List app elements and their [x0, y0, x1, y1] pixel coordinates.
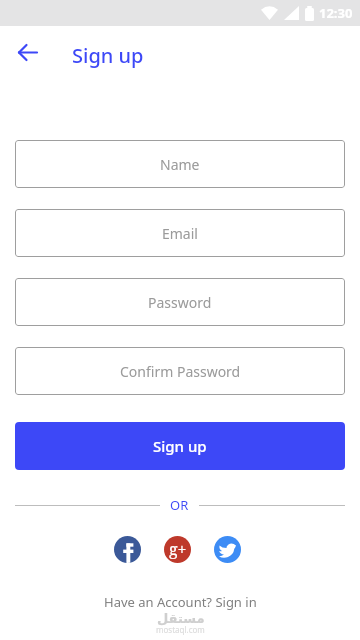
- staticText: Sign up: [72, 42, 144, 69]
- staticText: 12:30: [319, 4, 353, 22]
- staticText: Email: [162, 224, 198, 243]
- staticText: mostaql.com: [156, 624, 205, 635]
- staticText: Sign up: [153, 436, 207, 456]
- staticText: Password: [148, 293, 212, 312]
- staticText: g+: [169, 538, 187, 560]
- button[interactable]: Email: [15, 209, 345, 257]
- button[interactable]: Sign up: [15, 422, 345, 470]
- button[interactable]: g+: [164, 536, 191, 563]
- button[interactable]: Name: [15, 140, 345, 188]
- button[interactable]: [114, 536, 141, 563]
- button[interactable]: Have an Account? Sign in: [0, 593, 360, 611]
- button[interactable]: [19, 45, 37, 60]
- button[interactable]: Confirm Password: [15, 347, 345, 395]
- button[interactable]: Password: [15, 278, 345, 326]
- staticText: Have an Account? Sign in: [104, 593, 257, 611]
- staticText: مستقل: [157, 611, 205, 626]
- staticText: OR: [170, 496, 189, 514]
- staticText: Name: [160, 155, 200, 174]
- staticText: Confirm Password: [120, 362, 241, 381]
- button[interactable]: [214, 536, 241, 563]
